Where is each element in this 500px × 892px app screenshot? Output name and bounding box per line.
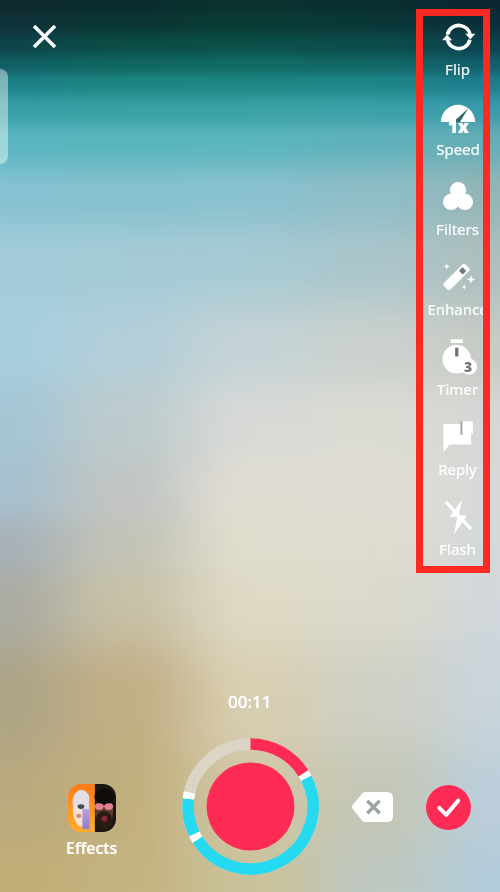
button[interactable]: Filters	[415, 178, 500, 242]
staticText: Effects	[66, 837, 118, 859]
staticText: 00:11	[228, 690, 272, 713]
staticText: 3	[464, 357, 473, 376]
staticText: Flip	[445, 59, 470, 79]
button[interactable]: Delete	[351, 792, 393, 822]
button[interactable]: Record	[182, 738, 319, 875]
button[interactable]: 3	[415, 338, 500, 402]
button[interactable]: Flip	[415, 18, 500, 82]
button[interactable]: Reply	[415, 418, 500, 482]
button[interactable]: Effects	[56, 784, 128, 859]
staticText: Speed	[436, 139, 480, 159]
staticText: Enhance	[427, 299, 488, 319]
staticText: Flash	[439, 539, 476, 559]
staticText: Reply	[438, 459, 477, 479]
button[interactable]: Enhance	[415, 258, 500, 322]
staticText: Timer	[437, 379, 478, 399]
button[interactable]: 1x	[415, 98, 500, 162]
button[interactable]: Close	[24, 16, 65, 57]
button[interactable]: Confirm	[426, 785, 471, 830]
staticText: Filters	[436, 219, 479, 239]
staticText: 1x	[448, 115, 469, 138]
button[interactable]: Flash	[415, 498, 500, 562]
